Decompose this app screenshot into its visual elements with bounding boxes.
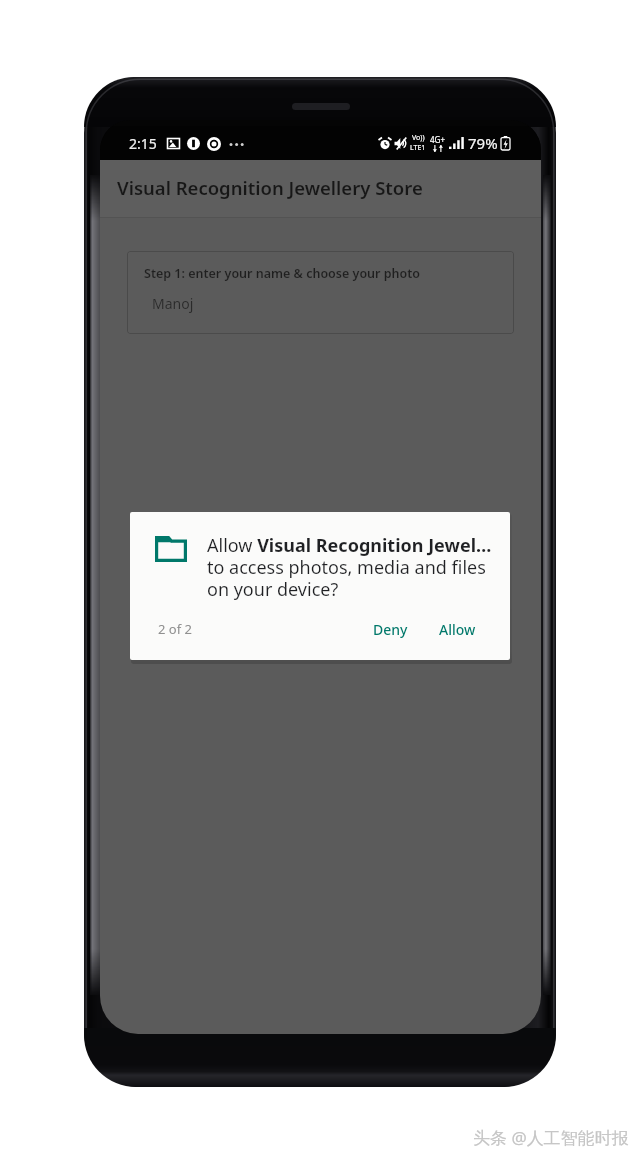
staticText: Allow: [439, 620, 476, 639]
staticText: Step 1: enter your name & choose your ph…: [144, 265, 421, 282]
staticText: Deny: [373, 620, 408, 639]
staticText: Vo)): [412, 133, 425, 143]
staticText: 4G+: [430, 134, 445, 145]
staticText: LTE1: [410, 143, 426, 153]
other: Storage folder: [155, 536, 187, 562]
button[interactable]: Step 1: enter your name & choose your ph…: [127, 251, 514, 334]
staticText: Visual Recognition Jewellery Store: [117, 175, 423, 200]
button[interactable]: Deny: [365, 611, 415, 647]
staticText: 2 of 2: [158, 620, 192, 638]
button[interactable]: Allow: [430, 611, 484, 647]
staticText: 头条 @人工智能时报: [473, 1126, 629, 1149]
staticText: Allow Visual Recognition Jewel… to acces…: [207, 533, 492, 602]
staticText: 79%: [468, 133, 498, 153]
staticText: Manoj: [152, 294, 194, 313]
staticText: 2:15: [129, 134, 157, 153]
